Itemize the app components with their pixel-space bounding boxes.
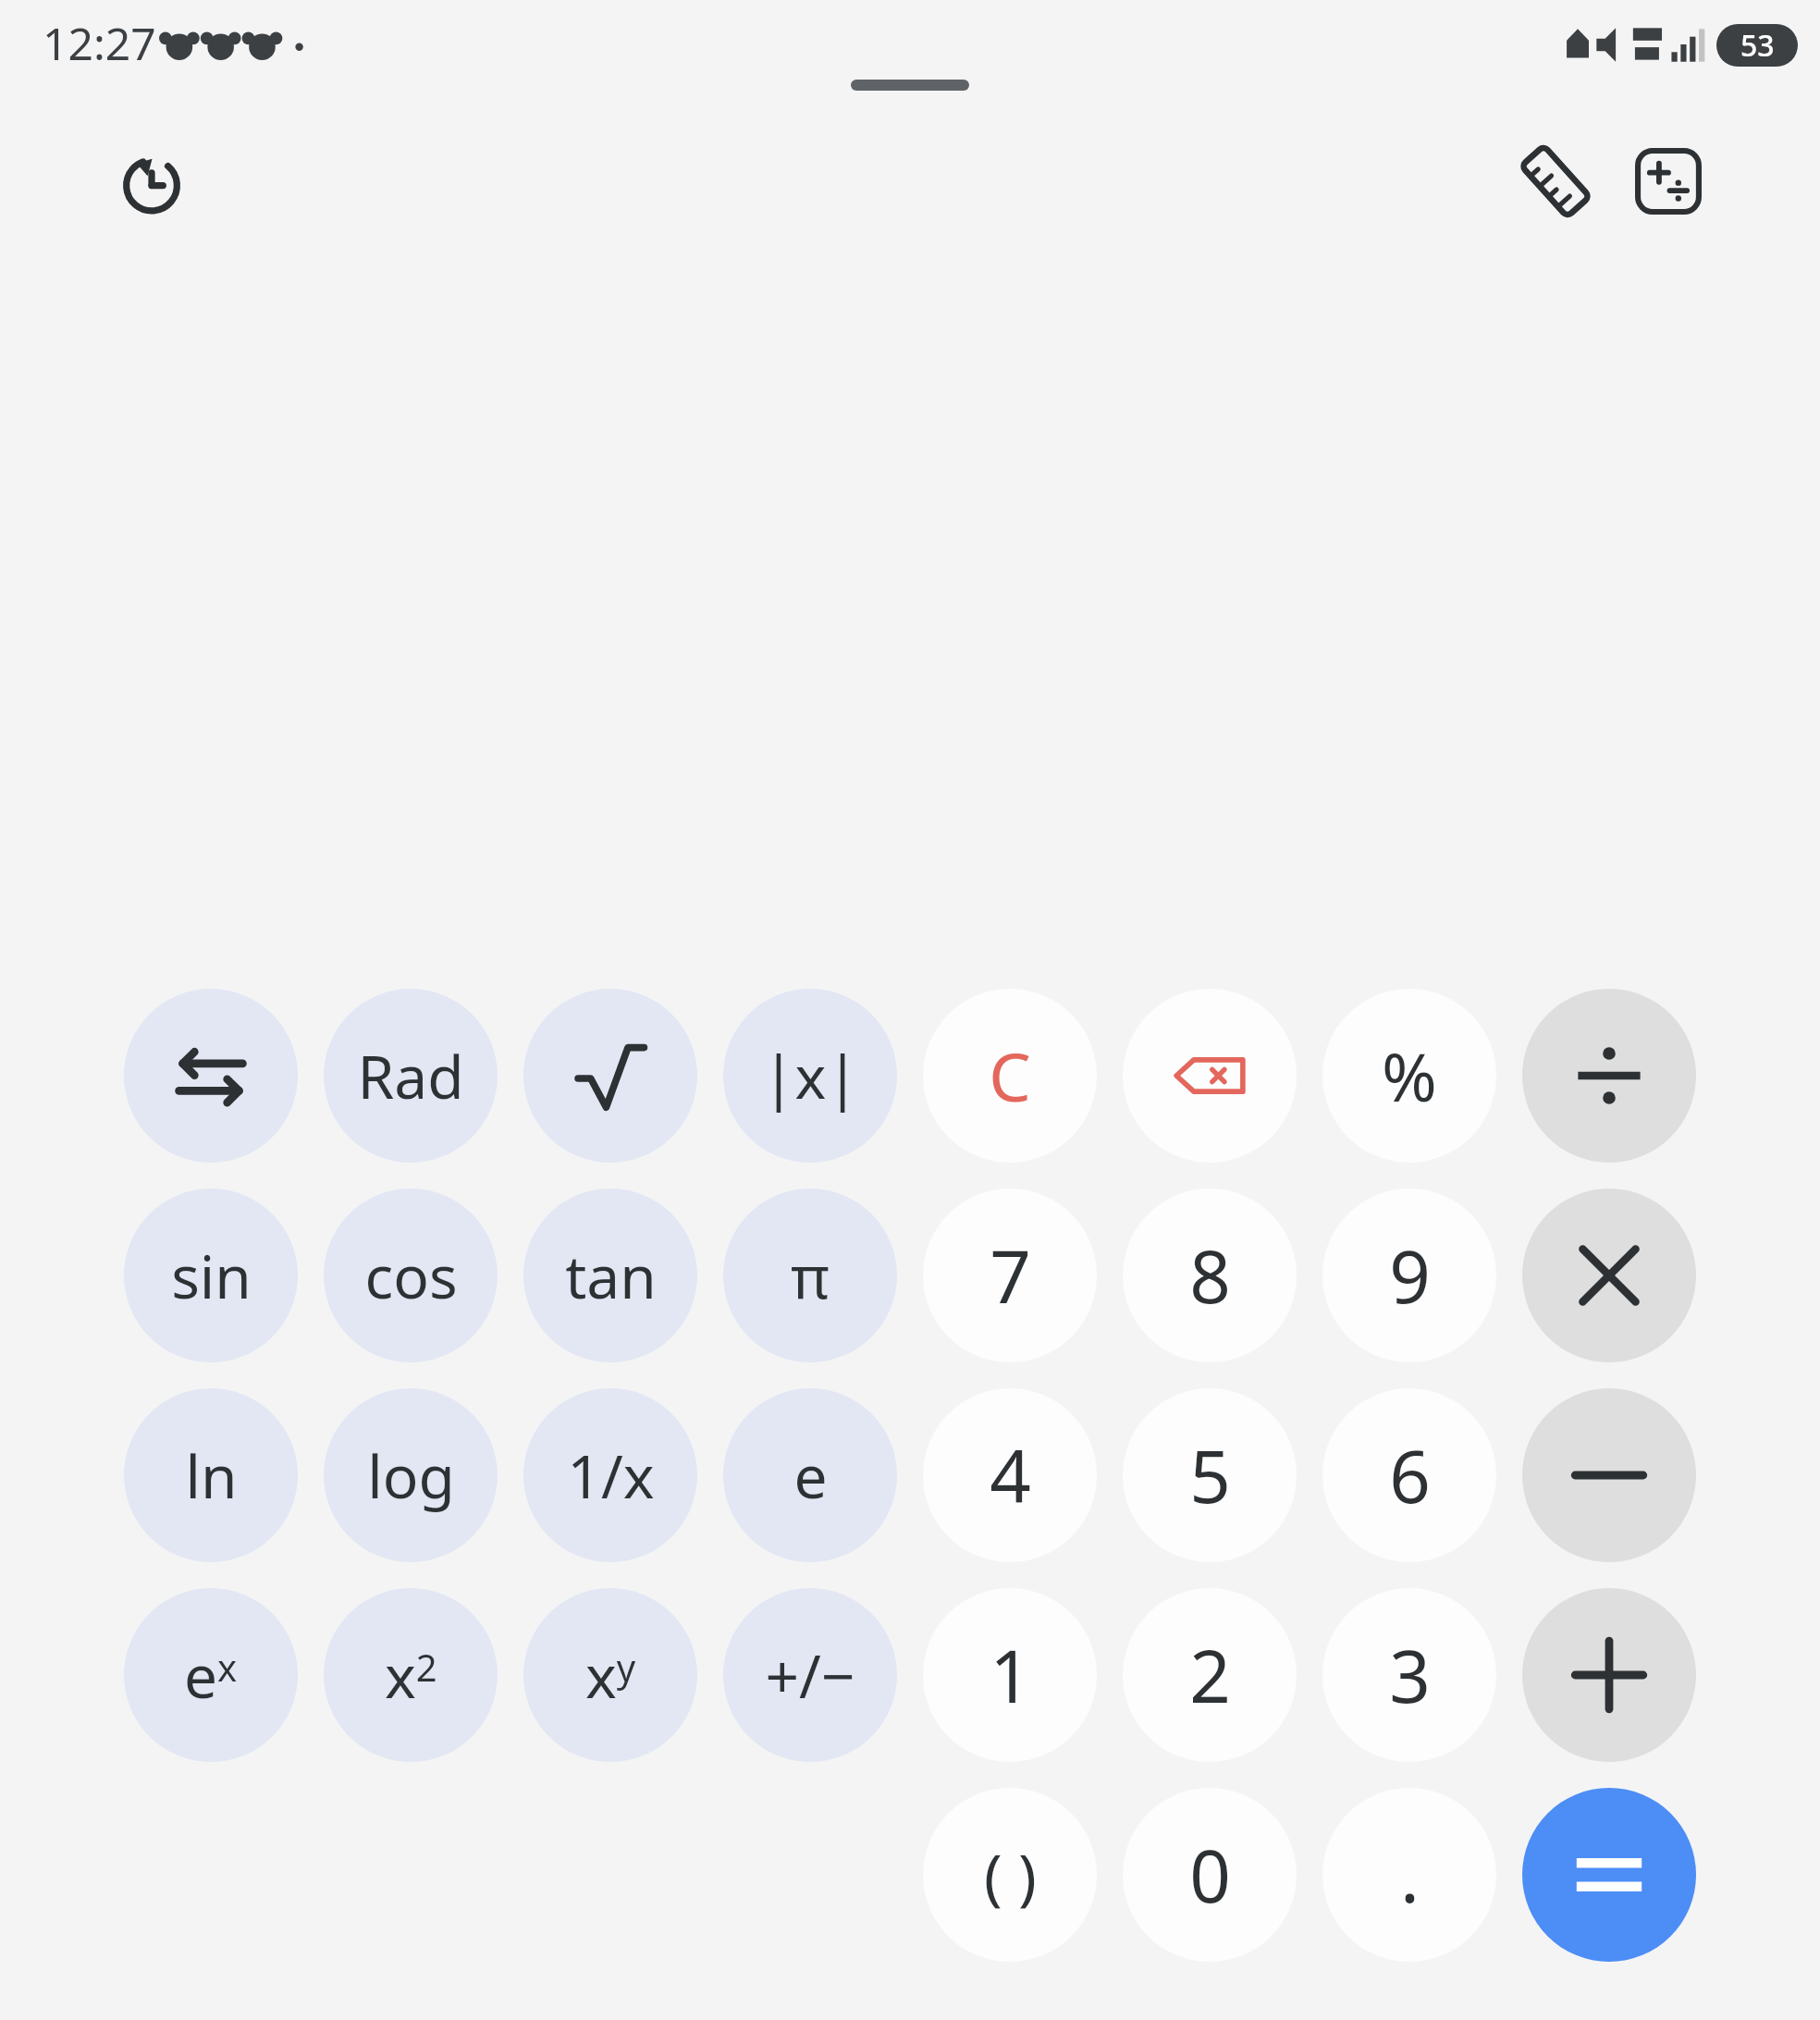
button[interactable]: 0 <box>1123 1788 1297 1962</box>
button[interactable]: ( ) <box>923 1788 1097 1962</box>
button[interactable]: ln <box>124 1388 298 1562</box>
staticText: 5 <box>1189 1426 1231 1524</box>
button[interactable]: log <box>324 1388 498 1562</box>
button[interactable]: cos <box>324 1189 498 1362</box>
button[interactable]: 1 <box>923 1588 1097 1762</box>
button[interactable]: Multiply <box>1522 1189 1696 1362</box>
staticText: log <box>367 1435 455 1516</box>
staticText: % <box>1382 1030 1437 1121</box>
staticText: +/− <box>765 1635 855 1716</box>
staticText: 3 <box>1389 1626 1431 1724</box>
staticText: 8 <box>1189 1226 1231 1324</box>
staticText: tan <box>565 1236 657 1316</box>
button[interactable]: Calculator mode <box>1617 129 1720 233</box>
button[interactable]: Rad <box>324 989 498 1163</box>
button[interactable]: x2 <box>324 1588 498 1762</box>
staticText: ( ) <box>984 1833 1037 1916</box>
button[interactable]: C <box>923 989 1097 1163</box>
staticText: e <box>793 1435 828 1516</box>
button[interactable]: +/− <box>723 1588 897 1762</box>
staticText: 12:27 <box>43 13 156 73</box>
button[interactable]: Divide <box>1522 989 1696 1163</box>
staticText: Rad <box>357 1036 464 1116</box>
button[interactable]: 7 <box>923 1189 1097 1362</box>
staticText: C <box>989 1030 1031 1121</box>
staticText: 53 <box>1740 25 1775 66</box>
staticText: 9 <box>1389 1226 1431 1324</box>
button[interactable]: π <box>723 1189 897 1362</box>
staticText: x2 <box>385 1635 437 1716</box>
staticText: 4 <box>990 1426 1031 1524</box>
staticText: 0 <box>1189 1826 1231 1924</box>
button[interactable]: Swap <box>124 989 298 1163</box>
staticText: 6 <box>1389 1426 1431 1524</box>
button[interactable]: 6 <box>1322 1388 1496 1562</box>
button[interactable]: 2 <box>1123 1588 1297 1762</box>
staticText: 1/x <box>567 1435 655 1516</box>
button[interactable]: History <box>100 129 203 233</box>
button[interactable]: 4 <box>923 1388 1097 1562</box>
staticText: cos <box>364 1236 458 1316</box>
staticText: 1 <box>990 1626 1031 1724</box>
button[interactable]: 8 <box>1123 1189 1297 1362</box>
button[interactable]: sin <box>124 1189 298 1362</box>
staticText: xy <box>585 1635 636 1716</box>
button[interactable]: % <box>1322 989 1496 1163</box>
button[interactable]: Unit converter <box>1504 129 1607 233</box>
staticText: sin <box>171 1236 252 1316</box>
staticText: ex <box>184 1635 238 1716</box>
button[interactable]: tan <box>523 1189 697 1362</box>
button[interactable]: . <box>1322 1788 1496 1962</box>
button[interactable]: 9 <box>1322 1189 1496 1362</box>
button[interactable]: Minus <box>1522 1388 1696 1562</box>
button[interactable]: 3 <box>1322 1588 1496 1762</box>
staticText: π <box>791 1236 830 1316</box>
staticText: ln <box>185 1435 238 1516</box>
staticText: 7 <box>990 1226 1031 1324</box>
staticText: 2 <box>1189 1626 1231 1724</box>
button[interactable]: Plus <box>1522 1588 1696 1762</box>
button[interactable]: ex <box>124 1588 298 1762</box>
staticText: . <box>1400 1826 1420 1924</box>
button[interactable]: xy <box>523 1588 697 1762</box>
button[interactable]: 1/x <box>523 1388 697 1562</box>
button[interactable]: 5 <box>1123 1388 1297 1562</box>
button[interactable] <box>523 989 697 1163</box>
button[interactable]: Backspace <box>1123 989 1297 1163</box>
button[interactable]: Equals <box>1522 1788 1696 1962</box>
button[interactable]: |x| <box>723 989 897 1163</box>
button[interactable]: e <box>723 1388 897 1562</box>
staticText: |x| <box>762 1036 859 1116</box>
